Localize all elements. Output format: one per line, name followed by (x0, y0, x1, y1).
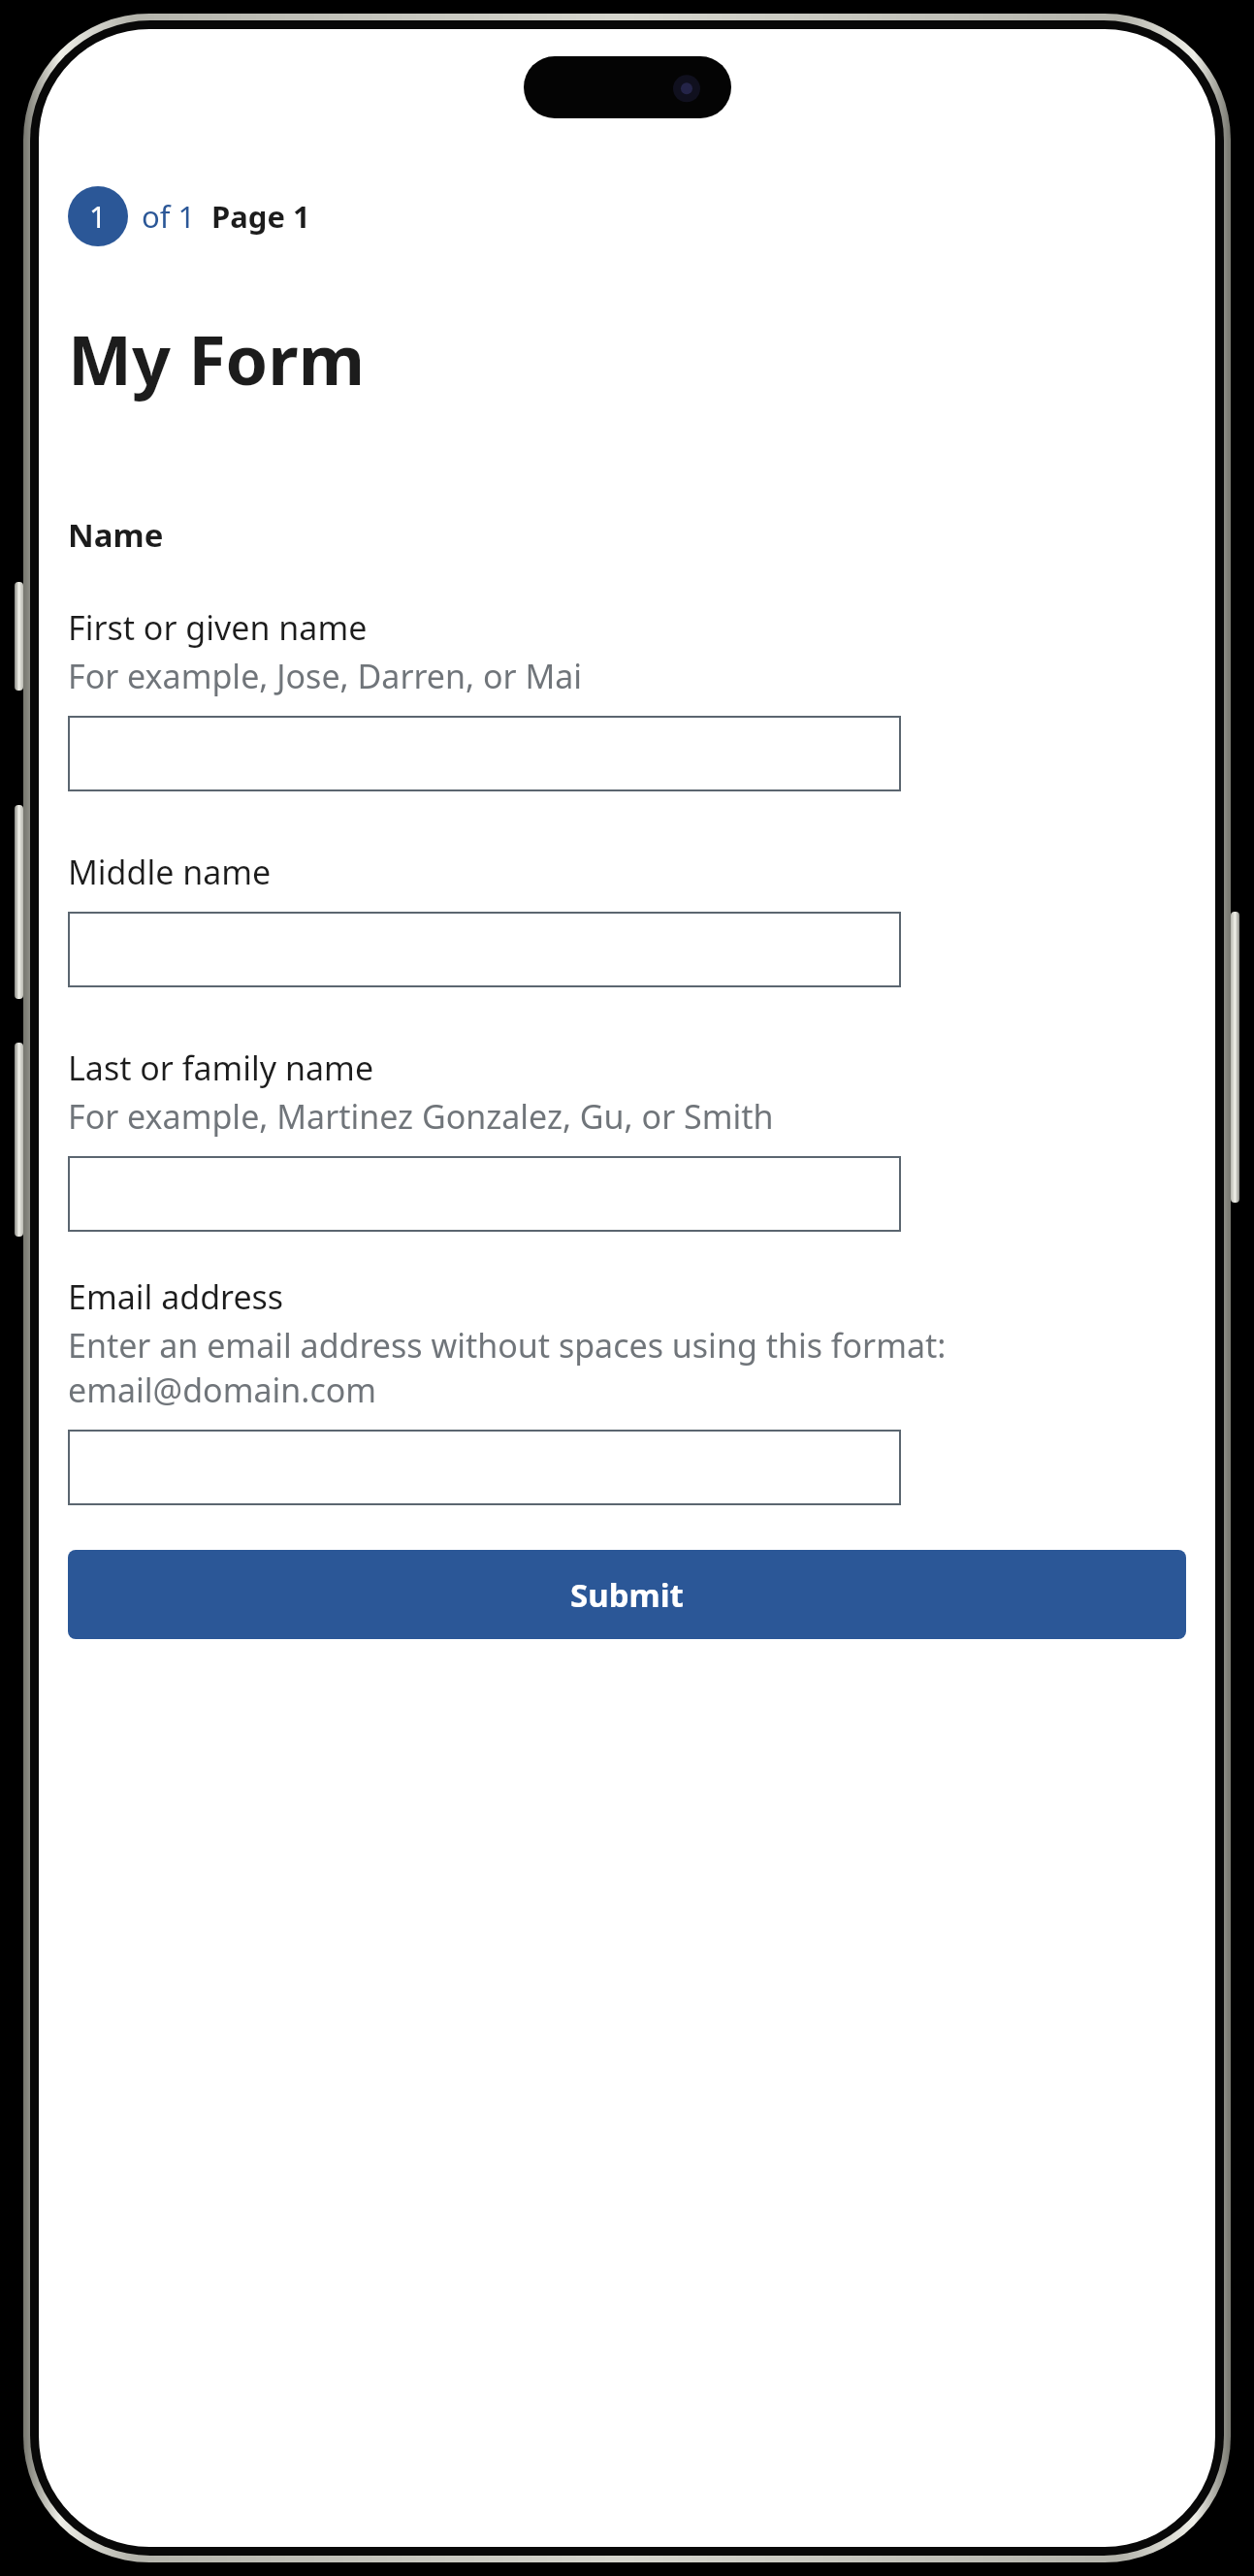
staticText: 1 (89, 196, 107, 237)
staticText: My Form (68, 312, 365, 404)
button[interactable]: Last or family name (68, 1156, 901, 1232)
staticText: Email address (68, 1274, 284, 1319)
staticText: Last or family name (68, 1046, 374, 1090)
button[interactable]: Submit (68, 1550, 1186, 1639)
staticText: Submit (570, 1573, 684, 1617)
staticText: Name (68, 513, 164, 557)
staticText: For example, Jose, Darren, or Mai (68, 654, 1108, 698)
staticText: Page 1 (211, 196, 310, 237)
button[interactable]: Middle name (68, 912, 901, 987)
staticText: of 1 (142, 196, 196, 237)
staticText: Enter an email address without spaces us… (68, 1323, 1108, 1412)
staticText: For example, Martinez Gonzalez, Gu, or S… (68, 1094, 1108, 1139)
staticText: First or given name (68, 605, 368, 650)
button[interactable]: First or given name (68, 716, 901, 791)
button[interactable]: 1 (68, 184, 310, 248)
staticText: Middle name (68, 850, 272, 894)
button[interactable]: Email address (68, 1430, 901, 1505)
